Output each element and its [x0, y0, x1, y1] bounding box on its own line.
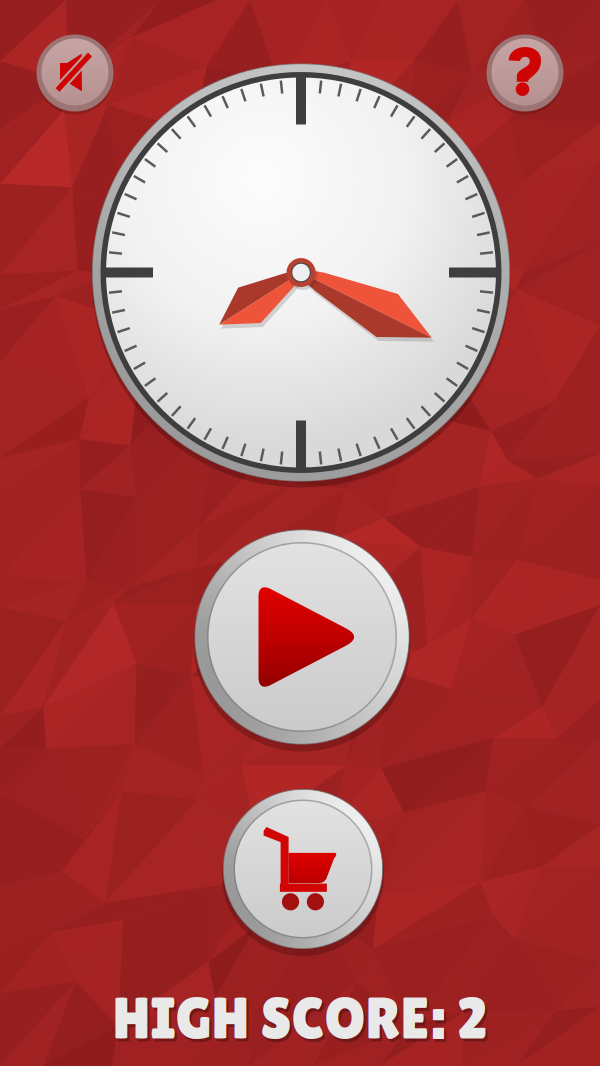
- button[interactable]: Mute sound: [36, 34, 113, 111]
- button[interactable]: Help: [486, 34, 563, 111]
- staticText: HIGH SCORE: 2: [112, 984, 487, 1052]
- staticText: HIGH SCORE: 2: [114, 987, 489, 1055]
- button[interactable]: Shop: [224, 790, 382, 948]
- button[interactable]: Play: [196, 531, 408, 743]
